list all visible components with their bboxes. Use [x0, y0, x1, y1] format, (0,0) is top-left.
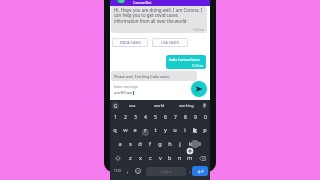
staticText: , [127, 168, 129, 175]
button[interactable]: , [123, 164, 133, 178]
button[interactable]: h [165, 137, 175, 151]
button[interactable]: e [130, 123, 140, 137]
button[interactable]: v [155, 151, 165, 165]
staticText: usa W3 wor [114, 90, 133, 95]
staticText: y [164, 126, 167, 134]
button[interactable]: Google [112, 102, 119, 109]
staticText: 2 [124, 114, 127, 121]
button[interactable]: Backspace [195, 151, 210, 165]
staticText: 5 [154, 114, 157, 121]
button[interactable]: l [195, 137, 205, 151]
button[interactable]: 2 [120, 110, 130, 124]
staticText: G [114, 103, 118, 109]
button[interactable]: Send [191, 81, 207, 97]
staticText: n [178, 154, 182, 162]
staticText: world [154, 103, 165, 108]
staticText: h [168, 140, 172, 148]
button[interactable]: Emoji [133, 164, 143, 178]
staticText: z [129, 154, 132, 162]
staticText: 8 [184, 114, 187, 121]
staticText: g [158, 140, 162, 148]
staticText: ?123 [114, 169, 121, 173]
staticText: j [179, 140, 181, 148]
button[interactable]: u [170, 123, 180, 137]
button[interactable]: t [150, 123, 160, 137]
button[interactable]: w [120, 123, 130, 137]
staticText: r [144, 126, 147, 134]
staticText: k [193, 125, 198, 135]
staticText: u [173, 126, 177, 134]
staticText: o [193, 126, 197, 134]
staticText: 0 [204, 114, 207, 121]
button[interactable]: o [190, 123, 200, 137]
staticText: English [161, 170, 172, 174]
button[interactable]: Symbols [111, 164, 123, 178]
staticText: s [129, 140, 132, 148]
button[interactable]: z [125, 151, 135, 165]
button[interactable]: r [140, 123, 150, 137]
staticText: q [113, 126, 117, 134]
button[interactable]: m [185, 151, 195, 165]
button[interactable]: 1 [110, 110, 120, 124]
staticText: Hi, Hope you are doing well. I am Corona… [114, 7, 203, 25]
staticText: India Corona Cases [169, 57, 200, 62]
staticText: l [199, 140, 201, 148]
button[interactable]: 6 [160, 110, 170, 124]
button[interactable]: 5 [150, 110, 160, 124]
button[interactable]: Enter [192, 166, 208, 176]
button[interactable]: x [135, 151, 145, 165]
button[interactable]: working [173, 99, 200, 111]
button[interactable]: y [160, 123, 170, 137]
button[interactable]: g [155, 137, 165, 151]
staticText: 10:32 am [193, 28, 205, 32]
button[interactable]: INDIA CASES [112, 38, 148, 47]
staticText: e [133, 126, 137, 134]
staticText: usa [129, 103, 136, 108]
button[interactable]: a [115, 137, 125, 151]
staticText: p [203, 126, 207, 134]
staticText: 7 [174, 114, 177, 121]
button[interactable]: . [186, 164, 194, 178]
button[interactable]: k [185, 137, 195, 151]
button[interactable]: b [165, 151, 175, 165]
button[interactable]: q [110, 123, 120, 137]
button[interactable]: d [135, 137, 145, 151]
staticText: 4 [144, 114, 147, 121]
button[interactable]: j [175, 137, 185, 151]
button[interactable]: Voice input [200, 101, 209, 110]
button[interactable]: 8 [180, 110, 190, 124]
button[interactable]: 4 [140, 110, 150, 124]
button[interactable]: Shift [110, 151, 125, 165]
staticText: f [149, 140, 151, 148]
staticText: USA CASES [161, 40, 179, 45]
staticText: k [189, 140, 192, 148]
button[interactable]: c [145, 151, 155, 165]
button[interactable]: p [200, 123, 210, 137]
staticText: Corona Bot [133, 0, 152, 5]
staticText: Enter message [114, 84, 138, 89]
button[interactable]: 9 [190, 110, 200, 124]
staticText: 10:33 am [192, 64, 204, 68]
button[interactable]: s [125, 137, 135, 151]
staticText: d [138, 140, 142, 148]
button[interactable]: USA CASES [152, 38, 188, 47]
staticText: 1 [114, 114, 117, 121]
button[interactable]: world [146, 99, 173, 111]
staticText: i [184, 126, 186, 134]
staticText: INDIA CASES [120, 40, 141, 45]
staticText: w [123, 126, 128, 134]
button[interactable]: i [180, 123, 190, 137]
staticText: Please wait, Fetching India cases [114, 74, 169, 79]
button[interactable]: 7 [170, 110, 180, 124]
button[interactable]: usa [119, 99, 146, 111]
staticText: t [154, 126, 157, 134]
button[interactable]: f [145, 137, 155, 151]
staticText: . [189, 168, 191, 175]
staticText: b [168, 154, 172, 162]
button[interactable]: 3 [130, 110, 140, 124]
button[interactable]: n [175, 151, 185, 165]
staticText: working [179, 103, 194, 108]
staticText: a [118, 140, 122, 148]
button[interactable]: Space [146, 167, 186, 176]
button[interactable]: 0 [200, 110, 210, 124]
